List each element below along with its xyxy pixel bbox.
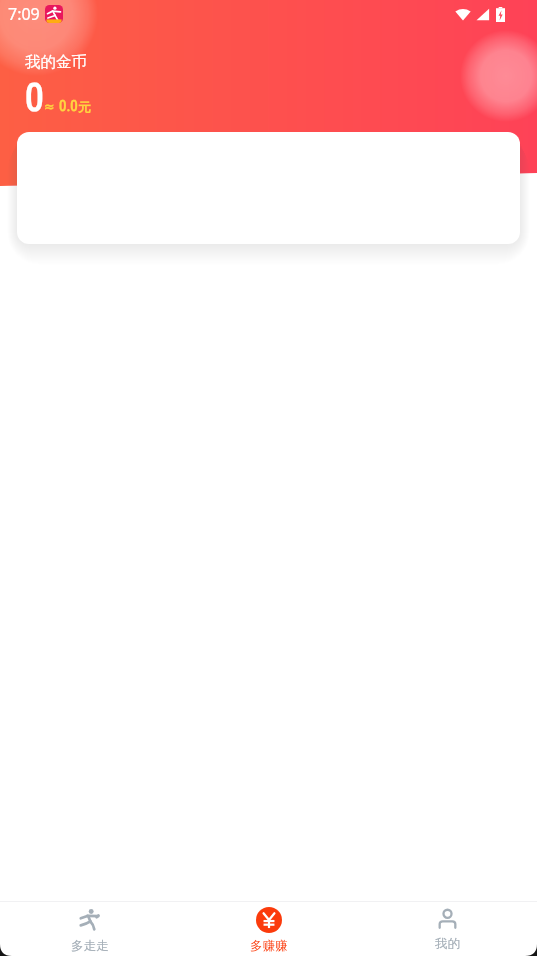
staticText: 多走走 — [71, 938, 109, 954]
button[interactable]: 我的 — [358, 902, 537, 956]
staticText: 多赚赚 — [250, 938, 288, 954]
staticText: 我的金币 — [25, 52, 87, 72]
staticText: 我的 — [435, 936, 460, 952]
button[interactable]: 多赚赚 — [179, 902, 358, 956]
button[interactable]: 多走走 — [0, 902, 179, 956]
staticText: 0.0 — [59, 97, 78, 115]
button[interactable]: 金币任务卡片 — [17, 132, 520, 244]
staticText: 0 — [25, 76, 44, 121]
staticText: 7:09 — [8, 3, 40, 25]
staticText: 元 — [78, 99, 91, 115]
staticText: ≈ — [44, 97, 59, 115]
